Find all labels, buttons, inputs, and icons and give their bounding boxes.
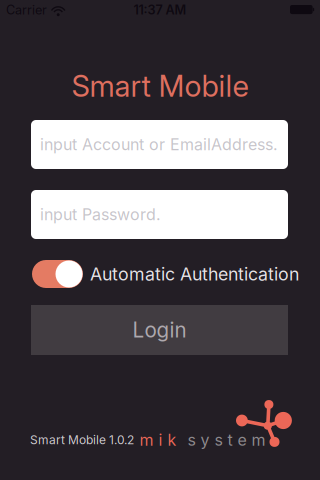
button[interactable]: Automatic Authentication toggle (32, 260, 83, 288)
button[interactable]: Login (31, 305, 288, 355)
staticText: s y s t e m (187, 430, 265, 450)
staticText: Carrier (6, 2, 47, 18)
staticText: Login (132, 317, 186, 342)
staticText: Smart Mobile 1.0.2 (30, 433, 134, 447)
staticText: m i k (139, 430, 176, 450)
staticText: input Password. (40, 205, 161, 224)
staticText: Automatic Authentication (90, 263, 299, 285)
staticText: 11:37 AM (133, 2, 186, 18)
staticText: Smart Mobile (71, 68, 248, 104)
staticText: input Account or EmailAddress. (40, 135, 278, 154)
